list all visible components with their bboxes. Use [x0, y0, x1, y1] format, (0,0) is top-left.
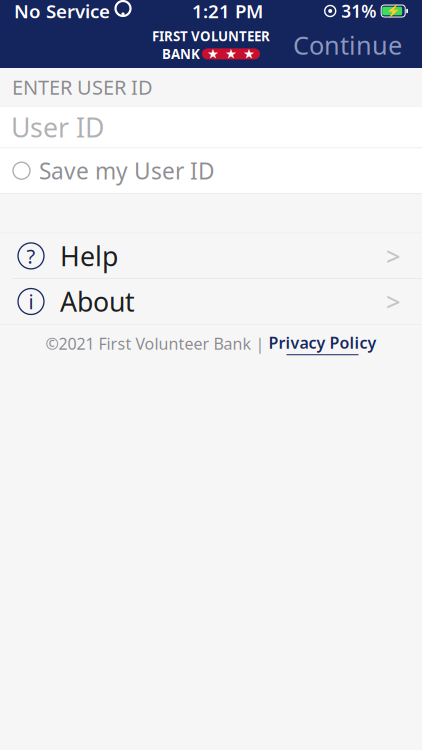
button[interactable]: ? [0, 233, 422, 278]
staticText: ★ [225, 46, 237, 61]
staticText: Continue [293, 28, 402, 62]
staticText: Save my User ID [39, 156, 215, 186]
staticText: 1:21 PM [192, 0, 263, 23]
button[interactable]: i [0, 279, 422, 324]
staticText: ⚡ [386, 4, 401, 18]
staticText: i [28, 288, 33, 315]
staticText: > [386, 239, 400, 273]
staticText: ? [26, 243, 35, 269]
staticText: ★ [207, 46, 219, 61]
staticText: About [60, 284, 135, 319]
staticText: ©2021 First Volunteer Bank | [45, 333, 268, 354]
staticText: Privacy Policy [268, 332, 376, 353]
staticText: No Service [14, 0, 110, 23]
staticText: User ID [11, 109, 104, 145]
button[interactable]: Save my User ID [0, 148, 422, 193]
staticText: ENTER USER ID [12, 74, 153, 100]
staticText: BANK [162, 45, 200, 63]
staticText: > [386, 285, 400, 318]
staticText: Help [60, 238, 118, 274]
staticText: FIRST VOLUNTEER [152, 27, 270, 45]
staticText: 31% [341, 0, 376, 22]
staticText: ★ [243, 46, 255, 61]
button[interactable]: Privacy Policy [268, 332, 376, 355]
button[interactable]: Continue [279, 20, 416, 70]
